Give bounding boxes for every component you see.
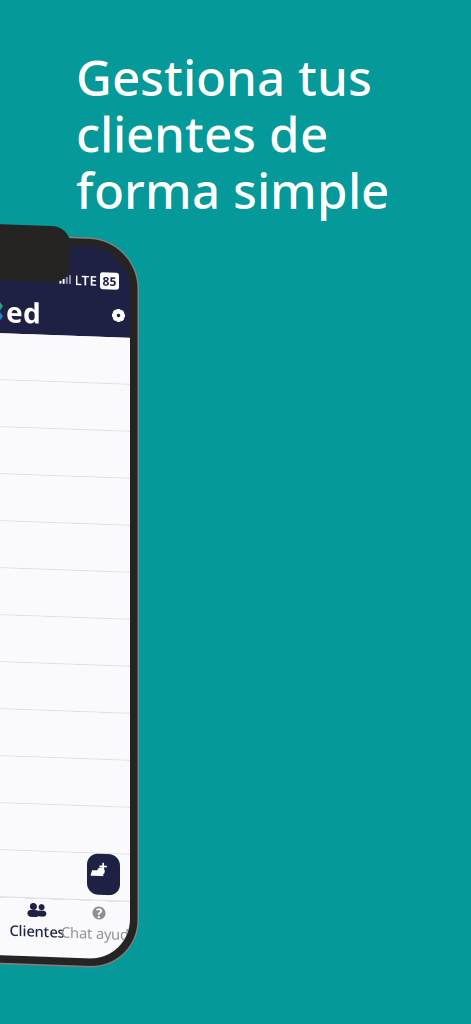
- staticText: ?: [96, 893, 102, 911]
- staticText: Clientes: [9, 913, 64, 932]
- button[interactable]: ?: [68, 896, 130, 932]
- staticText: forma simple: [76, 157, 389, 222]
- button[interactable]: [0, 843, 130, 890]
- button[interactable]: [0, 420, 130, 467]
- button[interactable]: Ajustes: [112, 297, 125, 310]
- button[interactable]: [0, 467, 130, 514]
- staticText: 85: [102, 262, 116, 278]
- button[interactable]: Clientes: [6, 896, 68, 932]
- button[interactable]: [0, 561, 130, 608]
- staticText: ed: [6, 285, 41, 323]
- staticText: clientes de: [76, 100, 328, 166]
- button[interactable]: [0, 702, 130, 749]
- button[interactable]: [0, 796, 130, 843]
- staticText: Gestiona tus: [76, 44, 372, 109]
- button[interactable]: [0, 326, 130, 373]
- button[interactable]: [0, 514, 130, 561]
- button[interactable]: [0, 749, 130, 796]
- button[interactable]: Inicio: [0, 285, 41, 323]
- staticText: LTE: [74, 261, 96, 279]
- button[interactable]: [0, 373, 130, 420]
- staticText: Chat ayuda: [61, 913, 137, 932]
- button[interactable]: [0, 655, 130, 702]
- button[interactable]: Añadir cliente: [87, 843, 120, 884]
- button[interactable]: [0, 608, 130, 655]
